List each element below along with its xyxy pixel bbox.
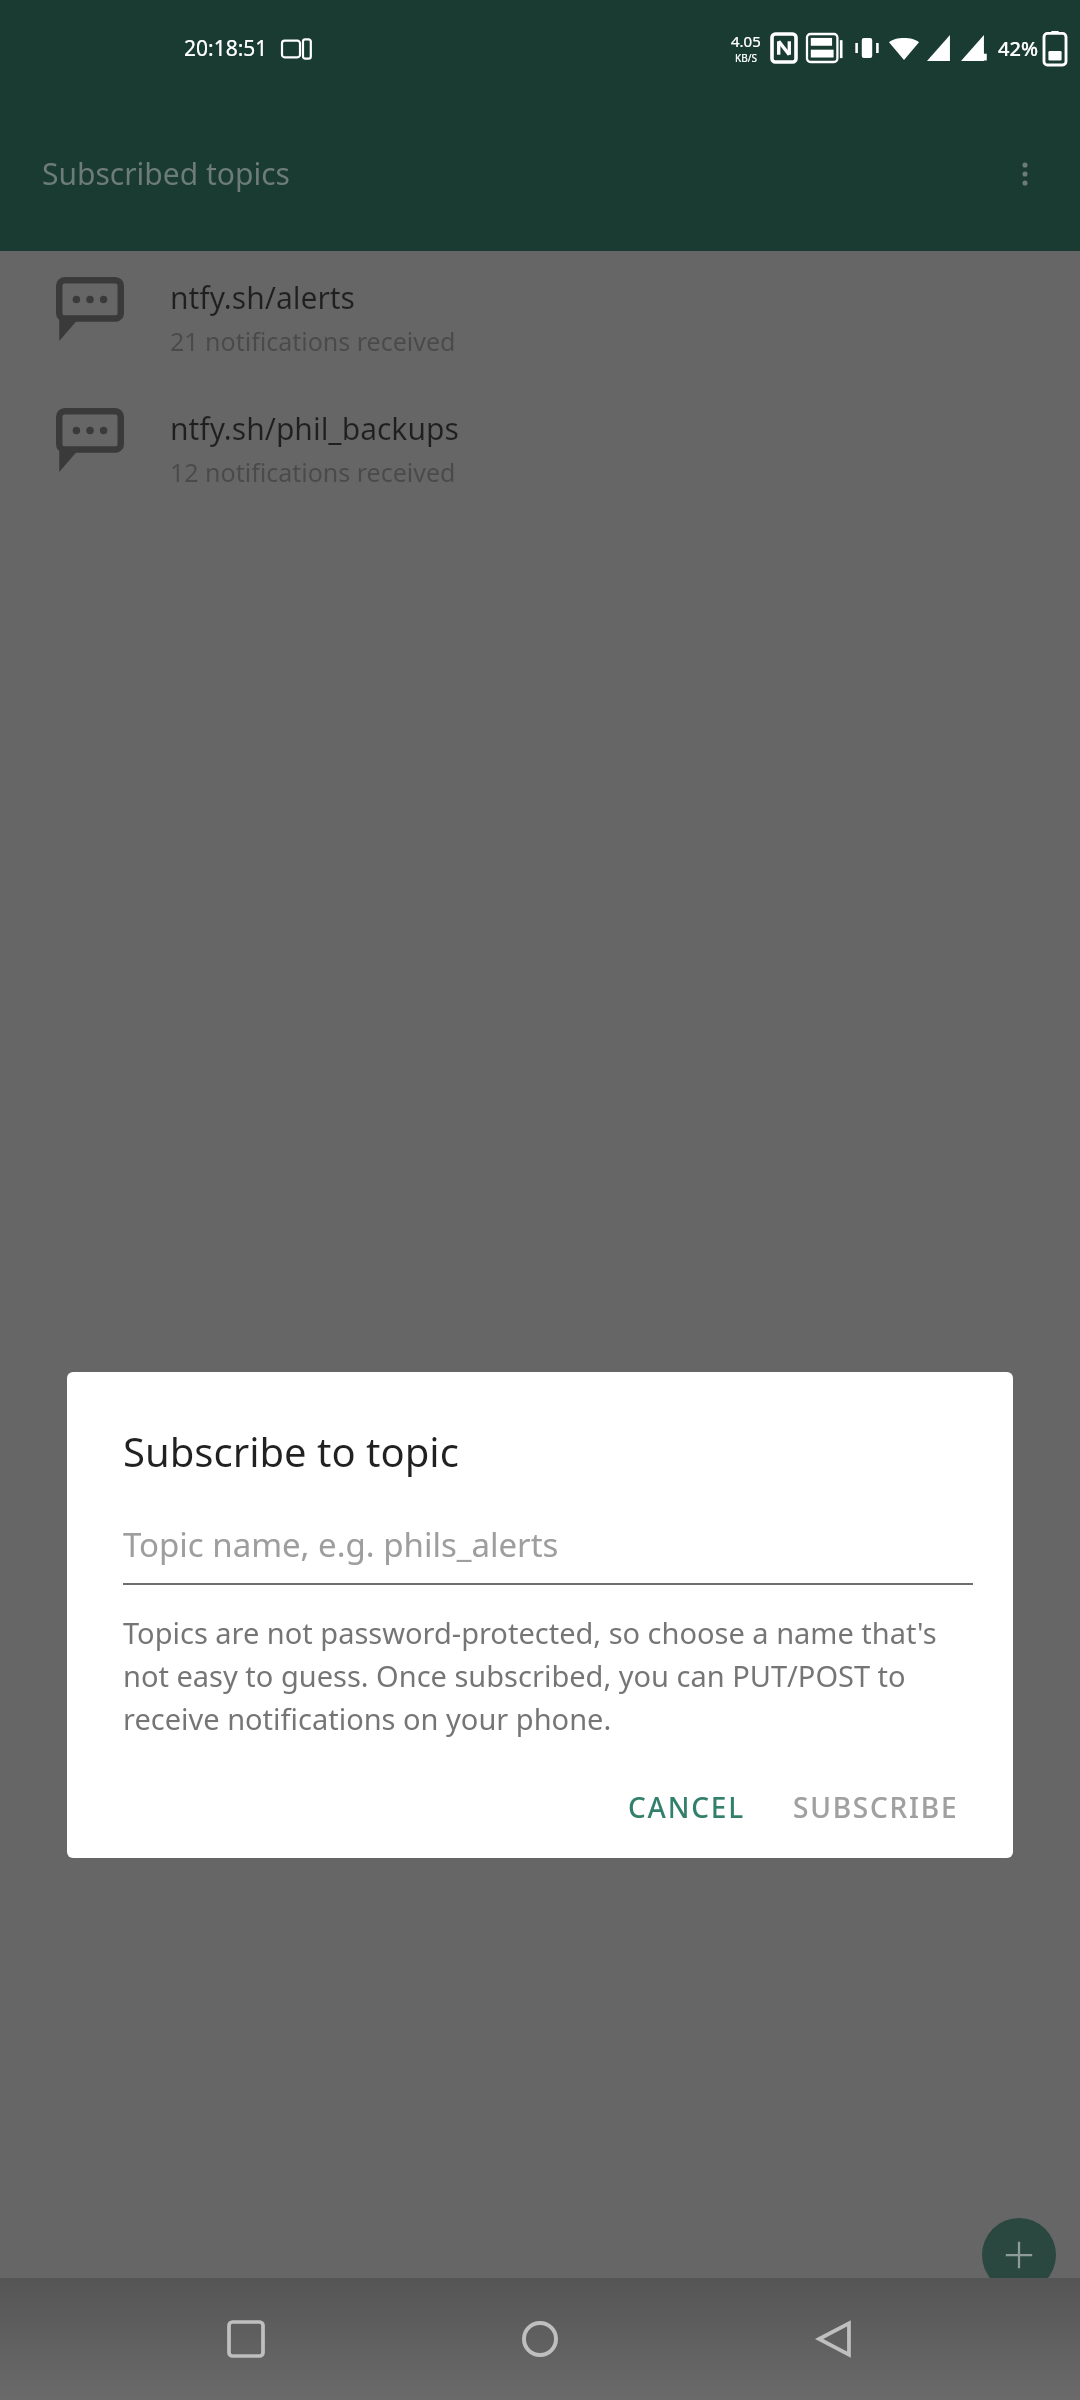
staticText: KB/S — [735, 51, 757, 65]
staticText: 12 notifications received — [170, 455, 456, 489]
staticText: ntfy.sh/alerts — [170, 277, 355, 318]
staticText: Topic name, e.g. phils_alerts — [123, 1522, 559, 1567]
staticText: CANCEL — [628, 1788, 745, 1826]
button[interactable]: Home — [492, 2291, 588, 2387]
button[interactable]: ntfy.sh/phil_backups — [0, 394, 1080, 503]
button[interactable]: Topic name, e.g. phils_alerts — [123, 1522, 973, 1585]
button[interactable]: Add subscription — [982, 2218, 1056, 2292]
staticText: ntfy.sh/phil_backups — [170, 408, 459, 449]
staticText: 21 notifications received — [170, 324, 456, 358]
button[interactable]: CANCEL — [614, 1772, 759, 1842]
staticText: 42% — [998, 35, 1038, 62]
staticText: Subscribe to topic — [123, 1424, 459, 1478]
button[interactable]: Back — [786, 2291, 882, 2387]
button[interactable]: Recent apps — [198, 2291, 294, 2387]
staticText: 4.05 — [731, 31, 761, 51]
staticText: SUBSCRIBE — [793, 1788, 959, 1826]
staticText: Topics are not password-protected, so ch… — [123, 1613, 973, 1738]
staticText: Subscribed topics — [42, 153, 290, 194]
staticText: 20:18:51 — [184, 34, 268, 63]
button[interactable]: More options — [990, 139, 1060, 209]
button[interactable]: ntfy.sh/alerts — [0, 263, 1080, 372]
button[interactable]: SUBSCRIBE — [779, 1772, 973, 1842]
